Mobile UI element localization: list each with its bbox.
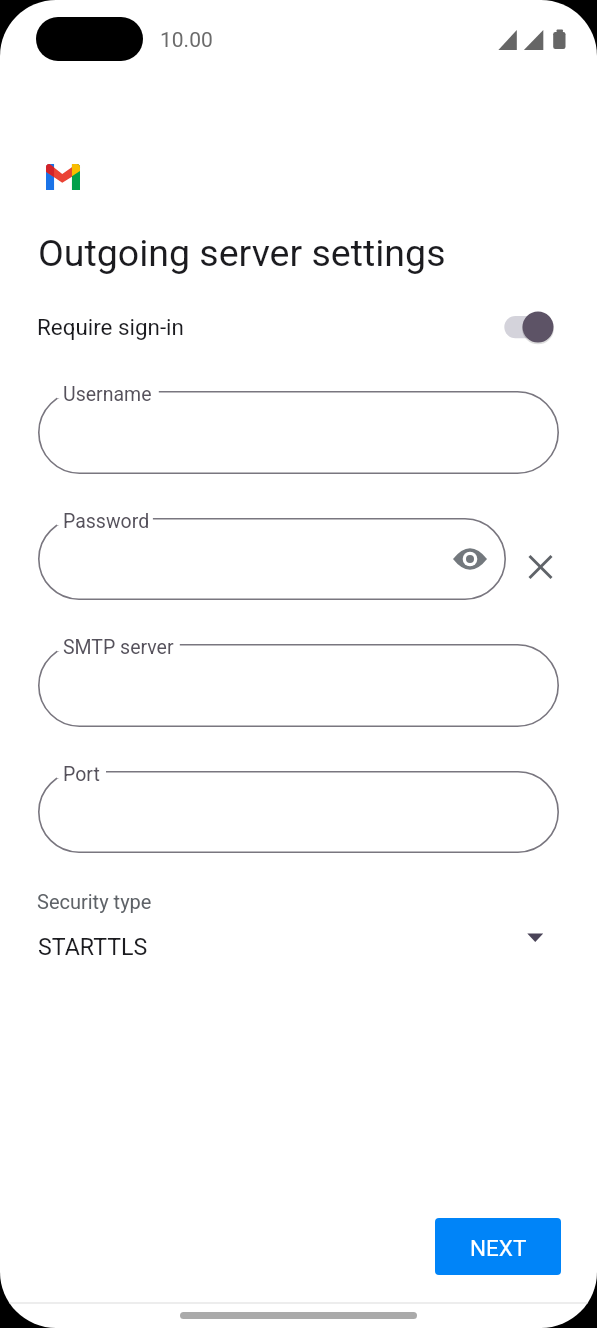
button[interactable]: Password xyxy=(38,518,506,600)
button[interactable]: Port xyxy=(38,771,559,853)
staticText: Security type xyxy=(37,890,152,913)
button[interactable]: Clear password xyxy=(516,543,564,591)
staticText: Port xyxy=(63,763,100,786)
button[interactable]: STARTTLS xyxy=(20,918,577,974)
staticText: Username xyxy=(63,383,152,406)
button[interactable]: SMTP server xyxy=(38,644,559,727)
staticText: STARTTLS xyxy=(38,933,148,960)
button[interactable]: Require sign-in xyxy=(20,300,577,354)
staticText: NEXT xyxy=(470,1235,527,1261)
staticText: Require sign-in xyxy=(37,314,184,340)
button[interactable]: NEXT xyxy=(435,1218,561,1275)
staticText: 10.00 xyxy=(160,28,213,53)
staticText: Outgoing server settings xyxy=(38,231,446,275)
button[interactable]: Show password xyxy=(446,535,494,583)
staticText: Password xyxy=(63,510,150,533)
staticText: SMTP server xyxy=(63,636,174,659)
button[interactable]: Username xyxy=(38,391,559,474)
